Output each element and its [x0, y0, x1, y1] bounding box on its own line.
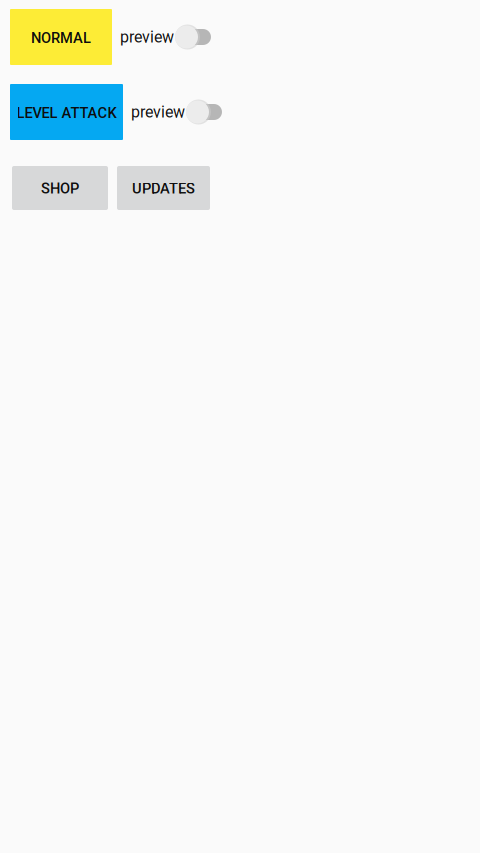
staticText: LEVEL ATTACK — [16, 104, 116, 122]
staticText: UPDATES — [132, 180, 195, 197]
staticText: preview — [131, 103, 185, 121]
staticText: NORMAL — [31, 29, 91, 47]
button[interactable]: Preview normal — [120, 24, 211, 50]
staticText: preview — [120, 28, 174, 46]
staticText: SHOP — [41, 180, 79, 197]
button[interactable]: UPDATES — [117, 166, 210, 210]
button[interactable]: NORMAL — [10, 9, 112, 65]
button[interactable]: LEVEL ATTACK — [10, 84, 123, 140]
button[interactable]: Preview level attack — [131, 99, 222, 125]
button[interactable]: SHOP — [12, 166, 108, 210]
